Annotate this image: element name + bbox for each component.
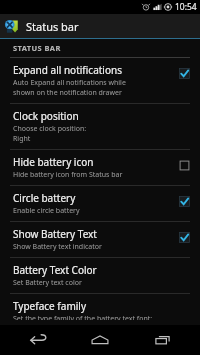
staticText: Battery Text Color	[13, 263, 97, 277]
staticText: Show Battery text indicator	[13, 242, 102, 252]
staticText: Set the type family of the battery text …	[13, 314, 153, 320]
staticText: STATUS BAR	[13, 43, 61, 53]
button[interactable]: Home	[77, 325, 123, 355]
staticText: Expand all notifications	[13, 63, 122, 77]
staticText: Set Battery text color	[13, 278, 82, 288]
button[interactable]: Hide battery icon	[0, 150, 200, 185]
staticText: Show Battery Text	[13, 227, 97, 241]
button[interactable]: Circle battery	[176, 193, 192, 209]
button[interactable]: Typeface family	[0, 294, 200, 325]
staticText: shown on the notification drawer	[13, 88, 122, 98]
button[interactable]: Expand all notifications	[176, 65, 192, 81]
staticText: Status bar	[26, 19, 79, 34]
button[interactable]: Recent apps	[139, 325, 185, 355]
staticText: Clock position	[13, 109, 79, 123]
button[interactable]: Expand all notifications	[0, 58, 200, 103]
button[interactable]: Clock position	[0, 104, 200, 149]
button[interactable]: Hide battery icon	[176, 157, 192, 173]
staticText: Typeface family	[13, 299, 86, 313]
staticText: Right	[13, 134, 31, 144]
staticText: Auto Expand all notifications while	[13, 78, 126, 88]
staticText: Enable circle battery	[13, 206, 80, 216]
staticText: Hide battery icon	[13, 155, 94, 169]
button[interactable]: Show Battery Text	[0, 222, 200, 257]
button[interactable]: Show Battery Text	[176, 229, 192, 245]
staticText: Hide battery icon from Status bar	[13, 170, 123, 180]
staticText: Choose clock position:	[13, 124, 87, 134]
staticText: Circle battery	[13, 191, 76, 205]
button[interactable]: Back	[16, 325, 62, 355]
button[interactable]: Circle battery	[0, 186, 200, 221]
staticText: 10:54	[175, 1, 197, 13]
button[interactable]: Battery Text Color	[0, 258, 200, 293]
